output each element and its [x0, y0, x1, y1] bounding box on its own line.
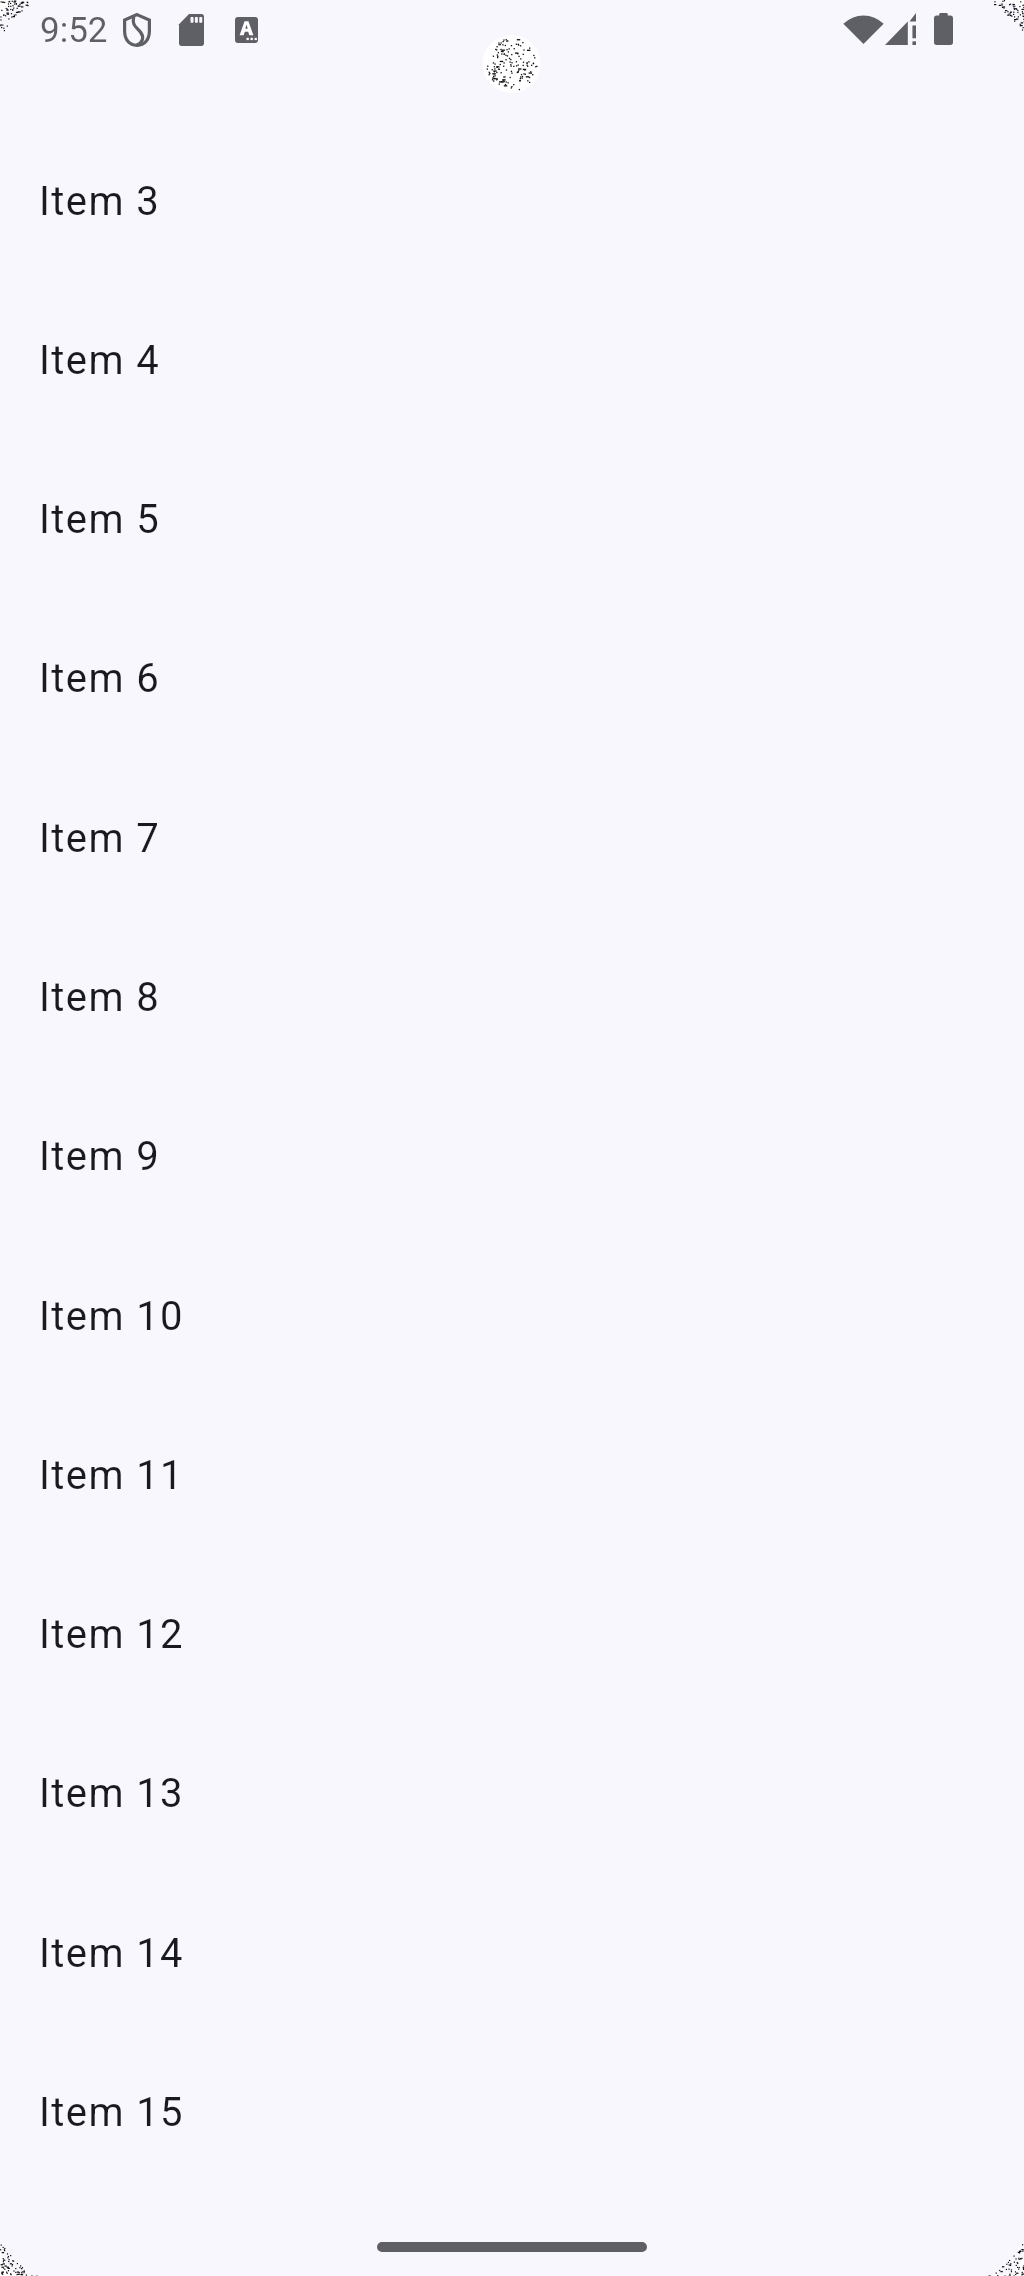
button[interactable]: Item 6: [0, 655, 1024, 814]
staticText: Item 10: [39, 1293, 184, 1340]
staticText: 9:52: [40, 10, 108, 51]
staticText: Item 7: [39, 815, 161, 862]
staticText: Item 8: [39, 974, 161, 1021]
button[interactable]: Item 15: [0, 2089, 1024, 2248]
staticText: Item 13: [39, 1770, 184, 1817]
staticText: Item 15: [39, 2089, 184, 2136]
button[interactable]: Item 9: [0, 1133, 1024, 1292]
button[interactable]: Item 13: [0, 1770, 1024, 1929]
other: SD card: [179, 14, 204, 46]
other: Mobile signal: [885, 13, 916, 45]
other: Home: [377, 2242, 647, 2252]
staticText: Item 14: [39, 1930, 184, 1977]
button[interactable]: Item 8: [0, 974, 1024, 1133]
button[interactable]: Item 12: [0, 1611, 1024, 1770]
other: VPN active: [123, 13, 151, 47]
button[interactable]: Item 5: [0, 496, 1024, 655]
staticText: Item 9: [39, 1133, 161, 1180]
button[interactable]: Item 10: [0, 1293, 1024, 1452]
button[interactable]: Item 4: [0, 337, 1024, 496]
other: Battery: [934, 13, 953, 45]
button[interactable]: Item 3: [0, 178, 1024, 337]
staticText: Item 5: [39, 496, 161, 543]
other: Wi-Fi: [845, 13, 882, 44]
staticText: Item 6: [39, 655, 161, 702]
button[interactable]: Item 14: [0, 1930, 1024, 2089]
staticText: Item 11: [39, 1452, 184, 1499]
staticText: Item 12: [39, 1611, 184, 1658]
button[interactable]: Item 11: [0, 1452, 1024, 1611]
other: Keyboard layout: [235, 17, 258, 43]
staticText: Item 4: [39, 337, 161, 384]
staticText: Item 3: [39, 178, 161, 225]
button[interactable]: Item 7: [0, 815, 1024, 974]
